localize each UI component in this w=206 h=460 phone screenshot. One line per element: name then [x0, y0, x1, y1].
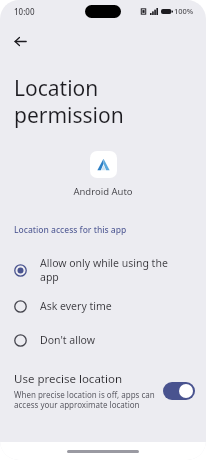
staticText: 100% — [174, 6, 194, 16]
staticText: Don't allow — [40, 333, 95, 347]
staticText: Location access for this app — [14, 224, 127, 236]
staticText: Allow only while using the app — [40, 256, 168, 284]
staticText: Ask every time — [40, 299, 112, 313]
staticText: Location permission — [14, 74, 124, 129]
button[interactable]: Allow only while using the app — [0, 251, 206, 289]
button[interactable]: Ask every time — [0, 289, 206, 323]
staticText: Use precise location — [14, 371, 123, 387]
button[interactable]: Use precise location — [0, 367, 206, 415]
button[interactable]: Back — [5, 26, 35, 56]
staticText: Android Auto — [73, 185, 133, 198]
staticText: 10:00 — [14, 6, 35, 17]
staticText: When precise location is off, apps can a… — [14, 389, 157, 411]
button[interactable]: Don't allow — [0, 323, 206, 357]
